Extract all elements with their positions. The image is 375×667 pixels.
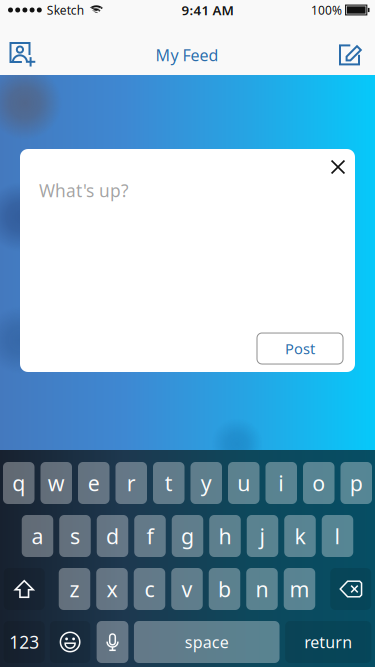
button[interactable]: a <box>22 515 53 557</box>
staticText: a <box>31 522 43 550</box>
staticText: 123 <box>9 630 39 653</box>
staticText: i <box>278 469 284 497</box>
staticText: o <box>312 469 325 497</box>
button[interactable]: return <box>285 621 371 663</box>
button[interactable]: h <box>209 515 241 557</box>
button[interactable]: w <box>40 462 72 504</box>
button[interactable]: t <box>153 462 184 504</box>
staticText: l <box>334 522 340 550</box>
staticText: 100% <box>311 2 342 18</box>
button[interactable]: Shift <box>4 568 45 610</box>
button[interactable]: o <box>303 462 334 504</box>
button[interactable]: s <box>59 515 91 557</box>
staticText: space <box>185 631 229 653</box>
button[interactable]: c <box>134 568 165 610</box>
button[interactable]: n <box>246 568 278 610</box>
staticText: v <box>181 575 192 603</box>
staticText: x <box>106 575 117 603</box>
staticText: What's up? <box>39 179 129 202</box>
button[interactable]: Delete <box>330 568 371 610</box>
staticText: p <box>350 469 363 497</box>
staticText: h <box>218 522 231 550</box>
button[interactable]: f <box>134 515 166 557</box>
staticText: w <box>48 469 65 497</box>
button[interactable]: e <box>78 462 109 504</box>
staticText: t <box>165 469 173 497</box>
staticText: q <box>12 469 25 497</box>
button[interactable]: k <box>284 515 316 557</box>
staticText: k <box>294 522 305 550</box>
staticText: j <box>259 522 265 550</box>
staticText: u <box>237 469 250 497</box>
button[interactable]: i <box>265 462 297 504</box>
button[interactable]: d <box>97 515 128 557</box>
button[interactable]: 123 <box>4 621 45 663</box>
button[interactable]: Close <box>321 152 355 182</box>
button[interactable]: l <box>322 515 353 557</box>
staticText: b <box>218 575 231 603</box>
button[interactable]: Emoji <box>50 621 90 663</box>
button[interactable]: x <box>96 568 128 610</box>
staticText: s <box>70 522 80 550</box>
button[interactable]: m <box>284 568 315 610</box>
button[interactable]: j <box>247 515 278 557</box>
button[interactable]: Post <box>257 333 343 364</box>
staticText: My Feed <box>155 44 218 66</box>
button[interactable]: u <box>228 462 259 504</box>
button[interactable]: space <box>134 621 280 663</box>
button[interactable]: z <box>59 568 90 610</box>
staticText: return <box>304 631 352 653</box>
staticText: f <box>146 522 153 550</box>
button[interactable]: Dictation <box>97 621 128 663</box>
staticText: e <box>88 469 100 497</box>
button[interactable]: y <box>190 462 222 504</box>
staticText: n <box>255 575 268 603</box>
staticText: m <box>289 575 309 603</box>
staticText: c <box>144 575 154 603</box>
staticText: 9:41 AM <box>181 1 233 19</box>
staticText: r <box>127 469 136 497</box>
button[interactable]: Compose <box>329 33 373 77</box>
button[interactable]: b <box>209 568 240 610</box>
button[interactable]: r <box>115 462 147 504</box>
button[interactable]: Add friends <box>1 33 45 77</box>
staticText: z <box>69 575 79 603</box>
button[interactable]: q <box>3 462 34 504</box>
staticText: y <box>201 469 212 497</box>
button[interactable]: g <box>172 515 203 557</box>
staticText: d <box>106 522 119 550</box>
staticText: Sketch <box>47 2 84 18</box>
staticText: g <box>181 522 194 550</box>
button[interactable]: p <box>340 462 372 504</box>
staticText: Post <box>285 339 315 358</box>
button[interactable]: v <box>171 568 203 610</box>
